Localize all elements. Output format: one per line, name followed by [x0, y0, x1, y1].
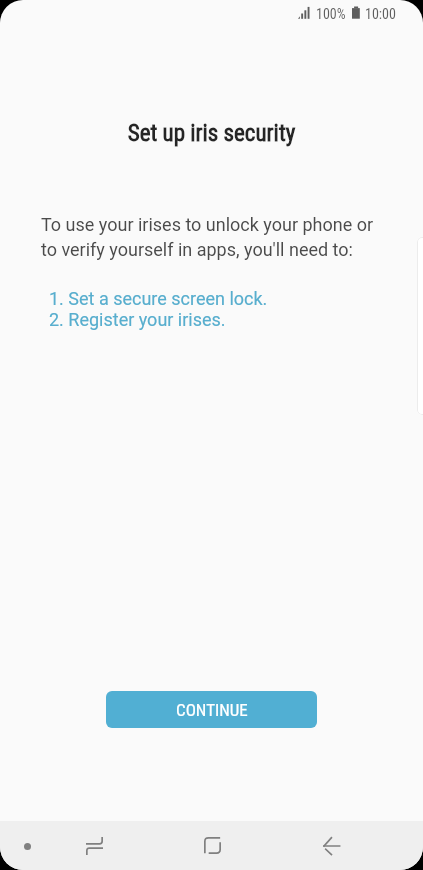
button[interactable]: CONTINUE — [106, 691, 317, 728]
button[interactable]: Recent apps — [66, 821, 122, 870]
button[interactable]: Home — [184, 821, 240, 870]
button[interactable]: Back — [303, 821, 359, 870]
staticText: 10:00 — [365, 6, 396, 22]
staticText: Set up iris security — [0, 120, 423, 147]
staticText: 100% — [316, 6, 346, 22]
staticText: CONTINUE — [176, 700, 248, 720]
staticText: To use your irises to unlock your phone … — [41, 214, 374, 260]
staticText: 1. Set a secure screen lock. 2. Register… — [49, 288, 268, 330]
